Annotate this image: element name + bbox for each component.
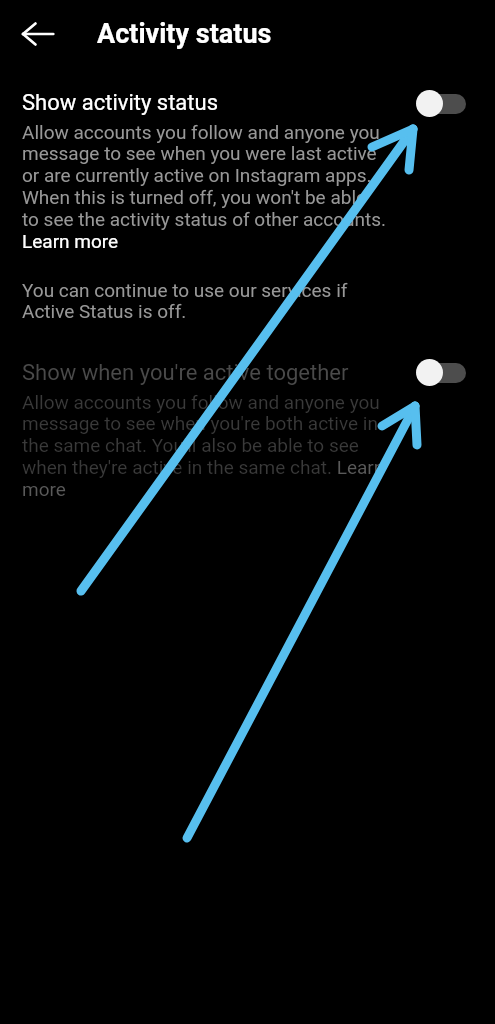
staticText: Show activity status: [22, 90, 219, 116]
button[interactable]: Back: [14, 11, 60, 57]
button[interactable]: Learn more: [340, 458, 386, 478]
staticText: Allow accounts you follow and anyone you…: [22, 121, 387, 253]
staticText: Activity status: [97, 18, 272, 50]
button[interactable]: Show activity status: [416, 90, 466, 117]
button[interactable]: Learn more: [22, 232, 118, 252]
button[interactable]: Show when you're active together: [416, 359, 466, 386]
button[interactable]: Show activity status: [0, 90, 495, 253]
button[interactable]: Show when you're active together: [0, 360, 495, 501]
staticText: You can continue to use our services if …: [22, 279, 387, 323]
staticText: Show when you're active together: [22, 360, 349, 386]
staticText: Allow accounts you follow and anyone you…: [22, 391, 387, 501]
